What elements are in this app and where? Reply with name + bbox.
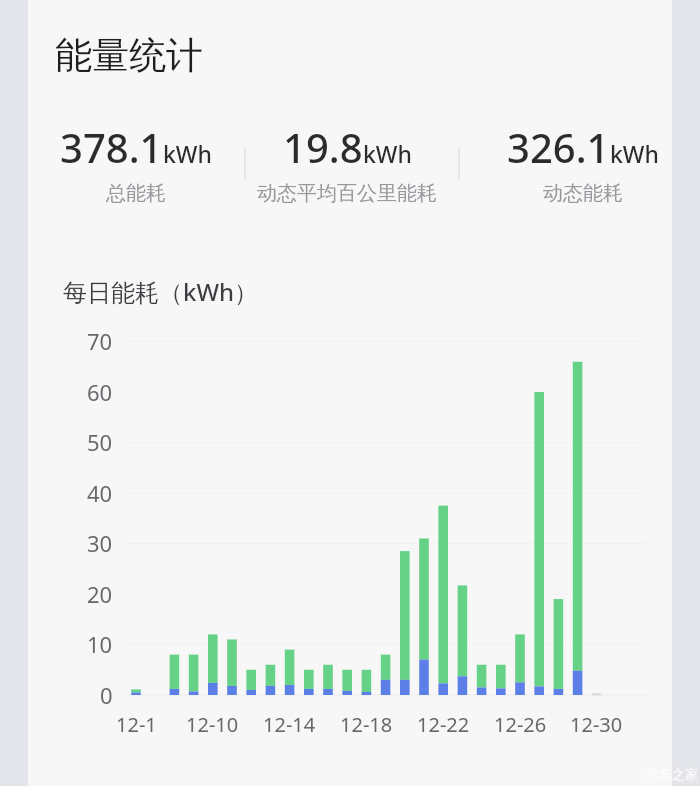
staticText: 总能耗 [106, 181, 166, 206]
staticText: kWh [163, 138, 212, 169]
staticText: 326.1 [507, 120, 610, 174]
staticText: 动态平均百公里能耗 [257, 181, 437, 206]
staticText: 19.8 [283, 120, 363, 174]
staticText: 30 [87, 528, 113, 558]
staticText: 12-30 [570, 711, 623, 738]
button[interactable]: 19.8 [217, 120, 477, 206]
staticText: 12-1 [116, 711, 157, 738]
staticText: 20 [87, 579, 113, 609]
staticText: 能量统计 [55, 32, 203, 79]
staticText: 汽车之家 [646, 766, 698, 782]
staticText: kWh [363, 138, 412, 169]
staticText: 70 [87, 326, 113, 356]
staticText: 12-10 [186, 711, 239, 738]
staticText: 10 [87, 629, 113, 659]
staticText: 12-14 [263, 711, 316, 738]
staticText: 378.1 [60, 120, 163, 174]
staticText: kWh [610, 138, 659, 169]
staticText: 12-18 [340, 711, 393, 738]
staticText: 12-22 [417, 711, 470, 738]
staticText: 0 [100, 680, 113, 710]
staticText: 40 [87, 478, 113, 508]
staticText: 60 [87, 377, 113, 407]
staticText: 每日能耗（kWh） [63, 275, 259, 308]
button[interactable]: 326.1 [453, 120, 700, 206]
staticText: 12-26 [494, 711, 547, 738]
staticText: 50 [87, 427, 113, 457]
button[interactable]: 378.1 [6, 120, 266, 206]
staticText: 动态能耗 [543, 181, 623, 206]
